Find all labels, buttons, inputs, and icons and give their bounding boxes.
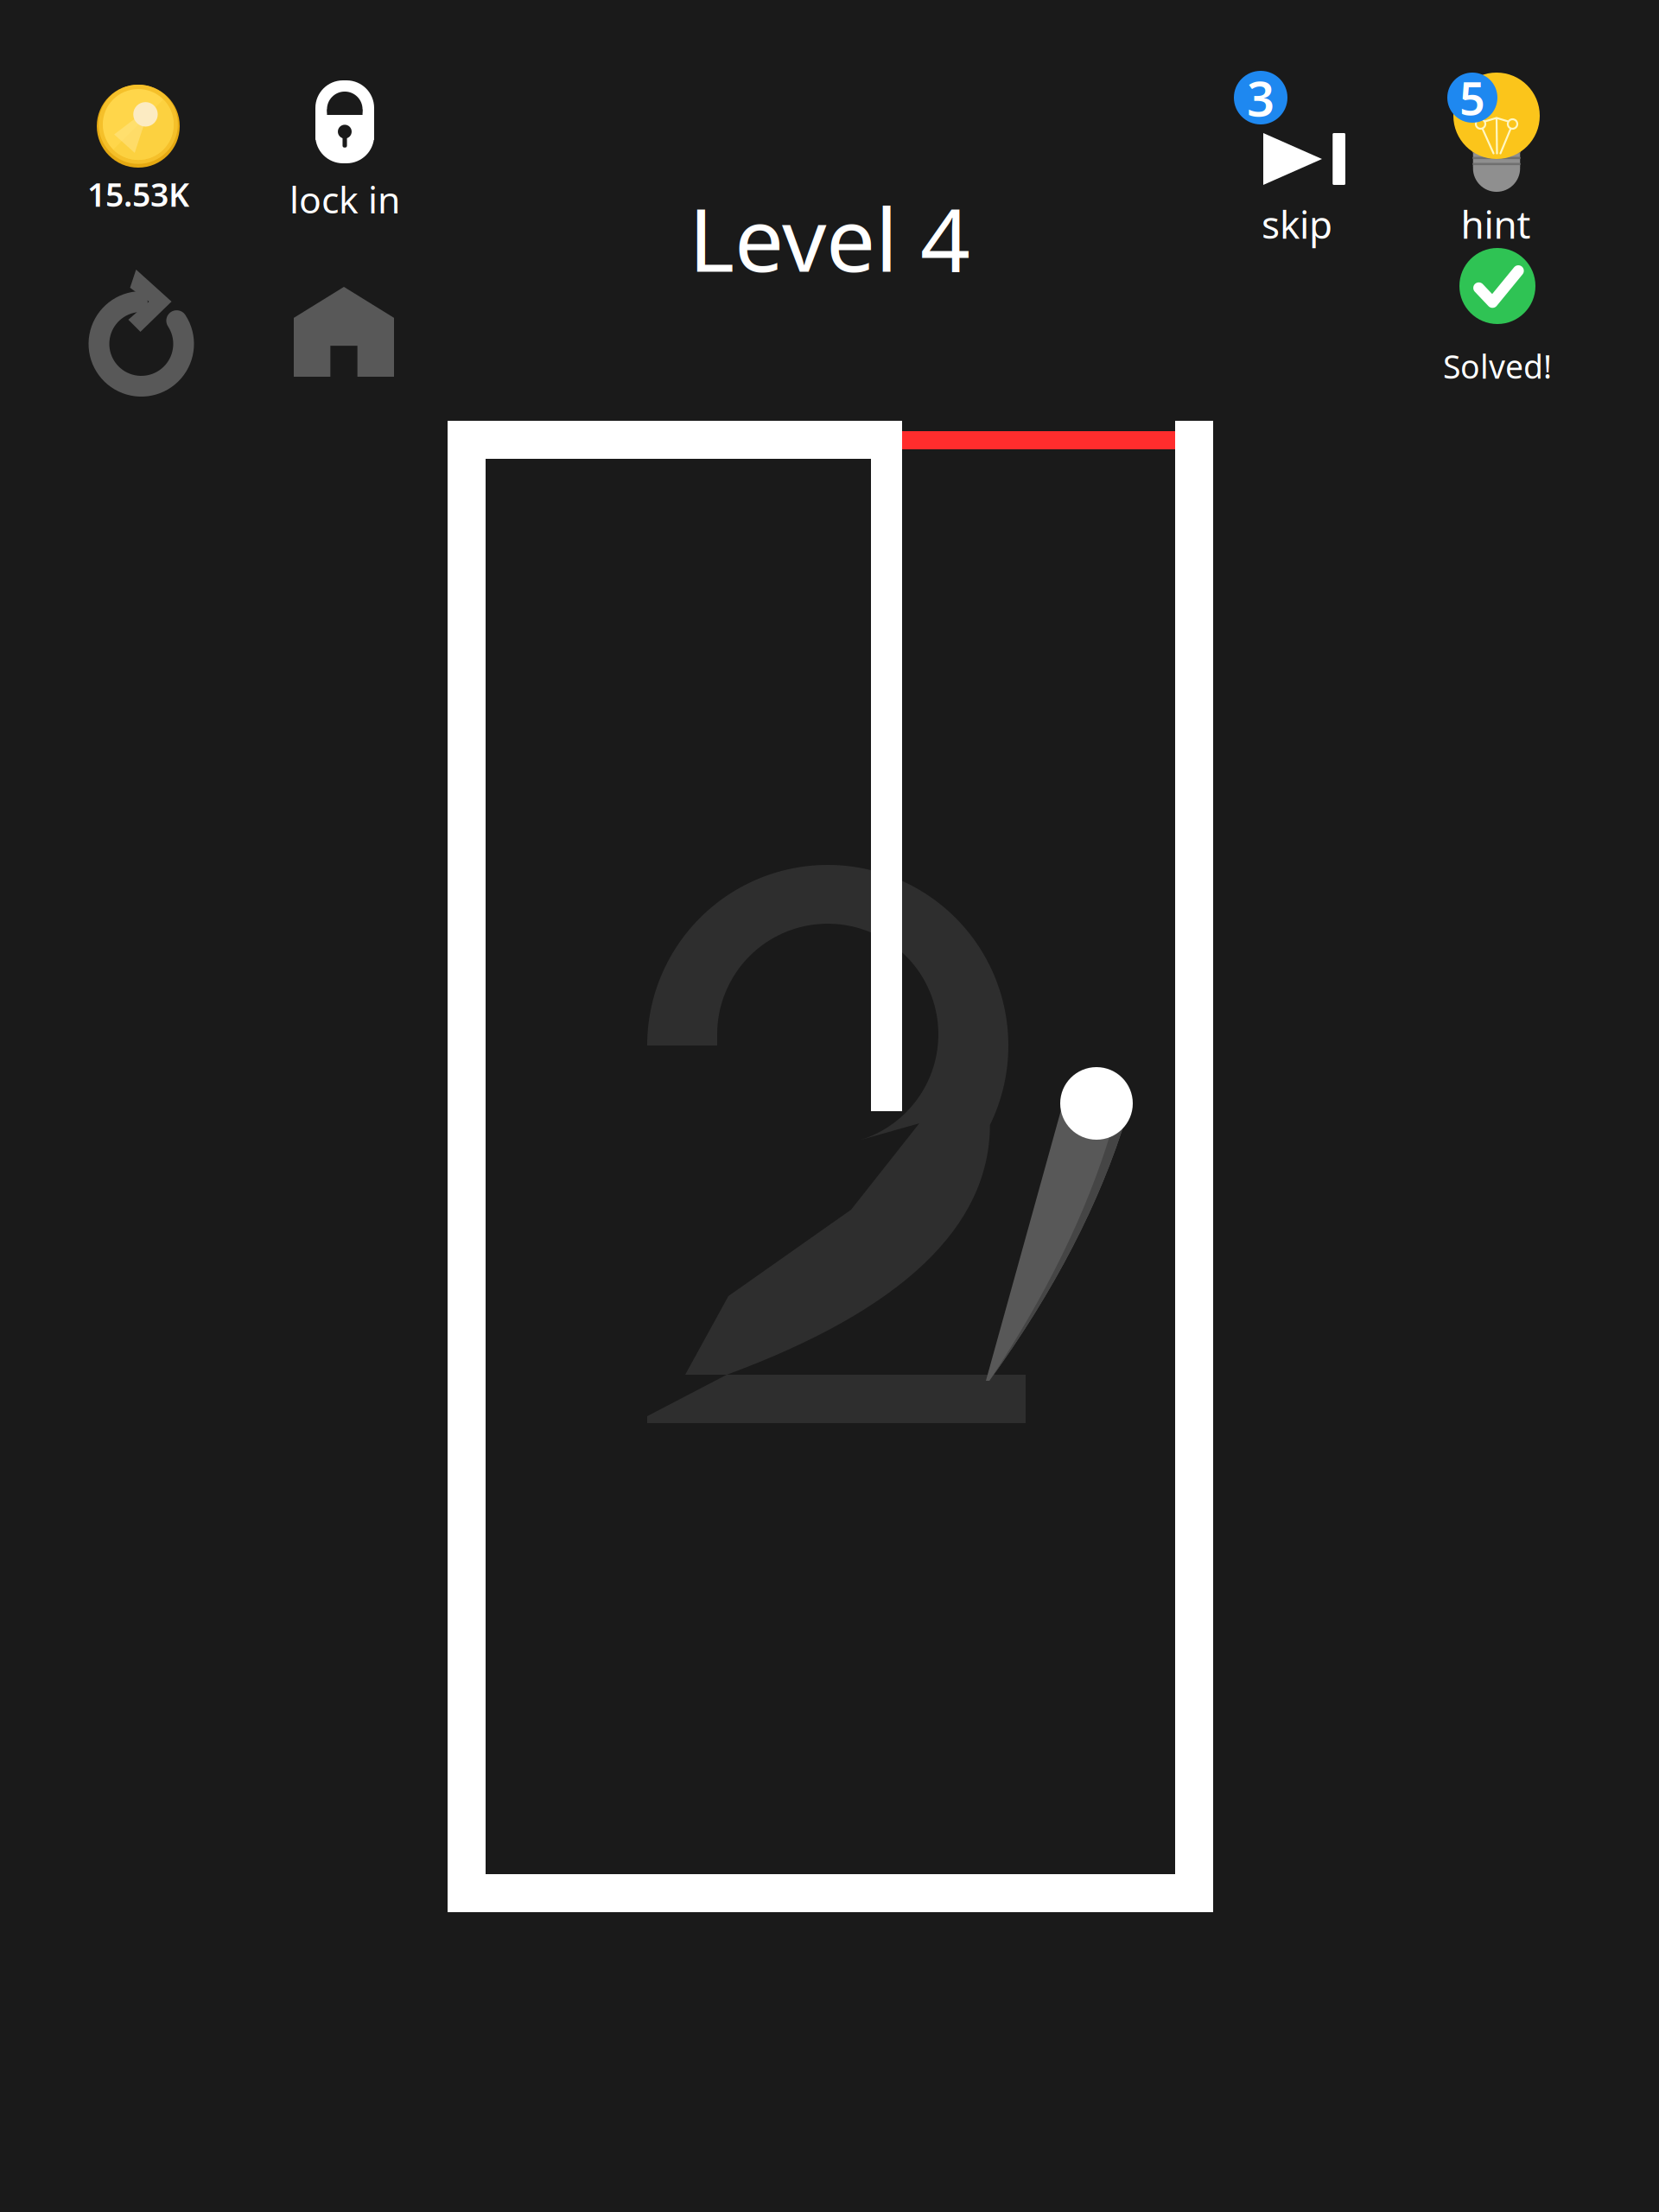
button[interactable]: 3 <box>1219 71 1375 278</box>
staticText: 15.53K <box>87 173 189 216</box>
staticText: skip <box>1262 199 1332 249</box>
staticText: Solved! <box>1443 345 1552 388</box>
button[interactable]: 5 <box>1418 35 1573 251</box>
button[interactable]: 15.53K <box>52 85 225 223</box>
staticText: lock in <box>289 175 400 224</box>
staticText: 3 <box>1247 65 1274 130</box>
staticText: Level 4 <box>689 180 970 296</box>
button[interactable]: Home <box>279 267 409 397</box>
staticText: 5 <box>1459 68 1485 128</box>
button[interactable]: lock in <box>258 80 431 219</box>
button[interactable]: Restart <box>77 264 207 402</box>
staticText: hint <box>1461 199 1531 249</box>
